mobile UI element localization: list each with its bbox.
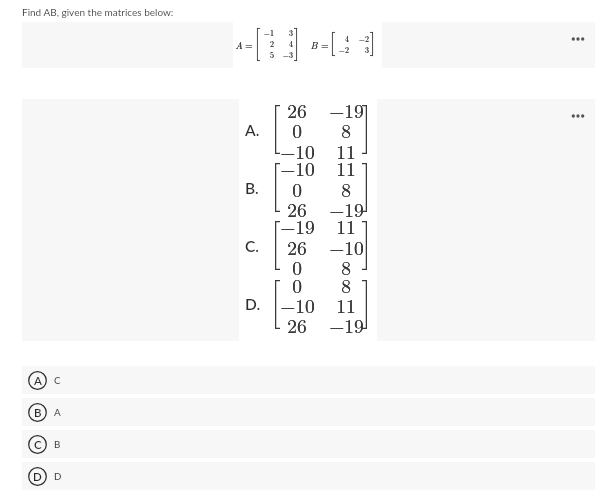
staticText: 0: [292, 253, 302, 281]
button[interactable]: C: [22, 430, 595, 458]
staticText: 5: [270, 49, 274, 59]
staticText: 26: [287, 311, 307, 339]
staticText: =: [245, 38, 253, 52]
staticText: 11: [336, 137, 356, 165]
staticText: −2: [358, 33, 369, 43]
staticText: =: [245, 38, 253, 52]
staticText: 8: [341, 271, 351, 299]
staticText: 8: [341, 175, 351, 203]
button[interactable]: D: [22, 462, 595, 490]
staticText: 11: [336, 154, 356, 182]
staticText: B: [310, 38, 318, 52]
staticText: 3: [365, 44, 369, 54]
staticText: 11: [336, 212, 356, 240]
staticText: 11: [336, 212, 356, 240]
staticText: 8: [341, 253, 351, 281]
staticText: B: [34, 406, 42, 420]
staticText: −3: [282, 49, 293, 59]
staticText: 8: [341, 175, 351, 203]
staticText: 8: [341, 271, 351, 299]
staticText: −19: [329, 311, 364, 339]
staticText: 26: [287, 195, 307, 223]
staticText: 0: [292, 116, 302, 144]
staticText: 3: [289, 27, 293, 37]
staticText: 26: [287, 195, 307, 223]
staticText: B: [310, 38, 318, 52]
staticText: −19: [329, 195, 364, 223]
staticText: −10: [280, 137, 315, 165]
staticText: −1: [263, 27, 274, 37]
staticText: A: [54, 406, 61, 418]
staticText: 11: [336, 291, 356, 319]
staticText: −19: [329, 311, 364, 339]
staticText: 8: [341, 116, 351, 144]
staticText: 11: [336, 137, 356, 165]
staticText: A: [34, 374, 42, 388]
staticText: C: [54, 374, 61, 386]
staticText: 0: [292, 116, 302, 144]
staticText: −19: [329, 96, 364, 124]
staticText: C: [34, 438, 42, 452]
staticText: −2: [338, 44, 349, 54]
staticText: −19: [329, 96, 364, 124]
button[interactable]: A: [22, 366, 595, 394]
staticText: Find AB, given the matrices below:: [22, 6, 174, 18]
staticText: A: [235, 38, 243, 52]
staticText: 0: [292, 175, 302, 203]
staticText: 8: [341, 271, 351, 299]
button[interactable]: A: [22, 22, 595, 68]
staticText: −10: [329, 233, 364, 261]
staticText: −3: [282, 49, 293, 59]
staticText: 26: [287, 96, 307, 124]
staticText: 0: [292, 116, 302, 144]
button[interactable]: More options: [569, 34, 587, 44]
staticText: 4: [289, 38, 293, 48]
staticText: A: [235, 38, 243, 52]
staticText: 26: [287, 311, 307, 339]
staticText: −10: [280, 291, 315, 319]
staticText: 26: [287, 233, 307, 261]
staticText: 26: [287, 195, 307, 223]
staticText: B.: [245, 179, 259, 198]
staticText: −19: [329, 195, 364, 223]
staticText: D: [54, 470, 62, 482]
staticText: −10: [280, 154, 315, 182]
staticText: 3: [365, 44, 369, 54]
staticText: =: [245, 38, 253, 52]
button[interactable]: More options: [569, 111, 587, 121]
staticText: 4: [345, 33, 349, 43]
staticText: 5: [270, 49, 274, 59]
staticText: =: [321, 38, 329, 52]
staticText: 11: [336, 154, 356, 182]
staticText: 0: [292, 271, 302, 299]
staticText: C.: [245, 237, 259, 256]
button[interactable]: B: [22, 398, 595, 426]
staticText: 0: [292, 271, 302, 299]
staticText: A: [235, 38, 243, 52]
staticText: −2: [358, 33, 369, 43]
staticText: 8: [341, 253, 351, 281]
staticText: −1: [263, 27, 274, 37]
button[interactable]: A.: [22, 99, 595, 341]
staticText: −10: [280, 137, 315, 165]
staticText: 11: [336, 291, 356, 319]
staticText: −10: [280, 154, 315, 182]
staticText: =: [321, 38, 329, 52]
staticText: −10: [329, 233, 364, 261]
staticText: −2: [338, 44, 349, 54]
staticText: 0: [292, 175, 302, 203]
staticText: −10: [280, 291, 315, 319]
staticText: 4: [345, 33, 349, 43]
staticText: 26: [287, 311, 307, 339]
staticText: 5: [270, 49, 274, 59]
staticText: −3: [282, 49, 293, 59]
staticText: 2: [270, 38, 274, 48]
staticText: −19: [280, 212, 315, 240]
staticText: D.: [245, 295, 261, 314]
staticText: −1: [263, 27, 274, 37]
staticText: −19: [329, 96, 364, 124]
staticText: −10: [280, 137, 315, 165]
staticText: 8: [341, 175, 351, 203]
staticText: 0: [292, 253, 302, 281]
staticText: −2: [338, 44, 349, 54]
